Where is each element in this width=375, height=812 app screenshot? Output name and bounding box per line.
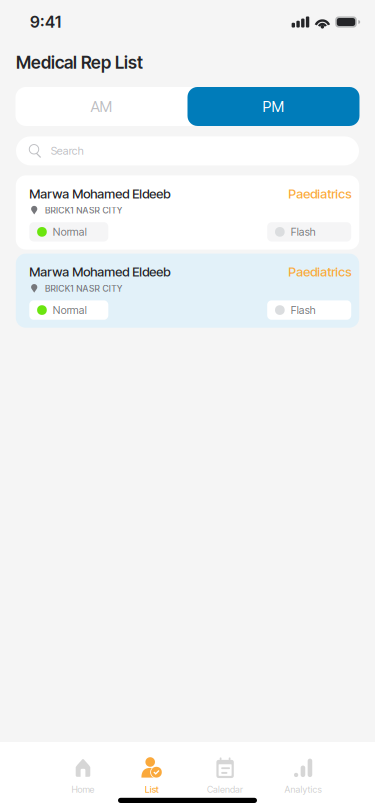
button[interactable]: Search	[16, 136, 359, 165]
button[interactable]: Calendar	[191, 742, 259, 812]
staticText: BRICK1 NASR CITY	[45, 283, 123, 294]
staticText: Calendar	[207, 784, 243, 795]
staticText: Paediatrics	[288, 264, 351, 280]
button[interactable]: Marwa Mohamed Eldeeb	[16, 175, 359, 250]
staticText: AM	[90, 97, 112, 115]
staticText: List	[145, 784, 159, 795]
button[interactable]: Analytics	[269, 742, 337, 812]
staticText: Normal	[53, 225, 87, 238]
staticText: Marwa Mohamed Eldeeb	[29, 264, 170, 280]
staticText: Flash	[291, 304, 316, 316]
button[interactable]: AM	[15, 87, 187, 126]
button[interactable]: Home	[49, 742, 117, 812]
staticText: BRICK1 NASR CITY	[45, 205, 123, 216]
staticText: PM	[262, 97, 284, 115]
staticText: Flash	[291, 225, 316, 238]
staticText: Search	[51, 144, 84, 157]
staticText: Marwa Mohamed Eldeeb	[29, 186, 170, 201]
staticText: Medical Rep List	[16, 52, 143, 73]
staticText: Paediatrics	[288, 186, 351, 201]
staticText: 9:41	[30, 12, 61, 32]
button[interactable]: List	[118, 742, 186, 812]
staticText: Analytics	[285, 784, 322, 795]
staticText: Normal	[53, 304, 87, 316]
button[interactable]: Marwa Mohamed Eldeeb	[16, 254, 359, 328]
staticText: Home	[71, 784, 94, 795]
button[interactable]: PM	[187, 87, 359, 126]
